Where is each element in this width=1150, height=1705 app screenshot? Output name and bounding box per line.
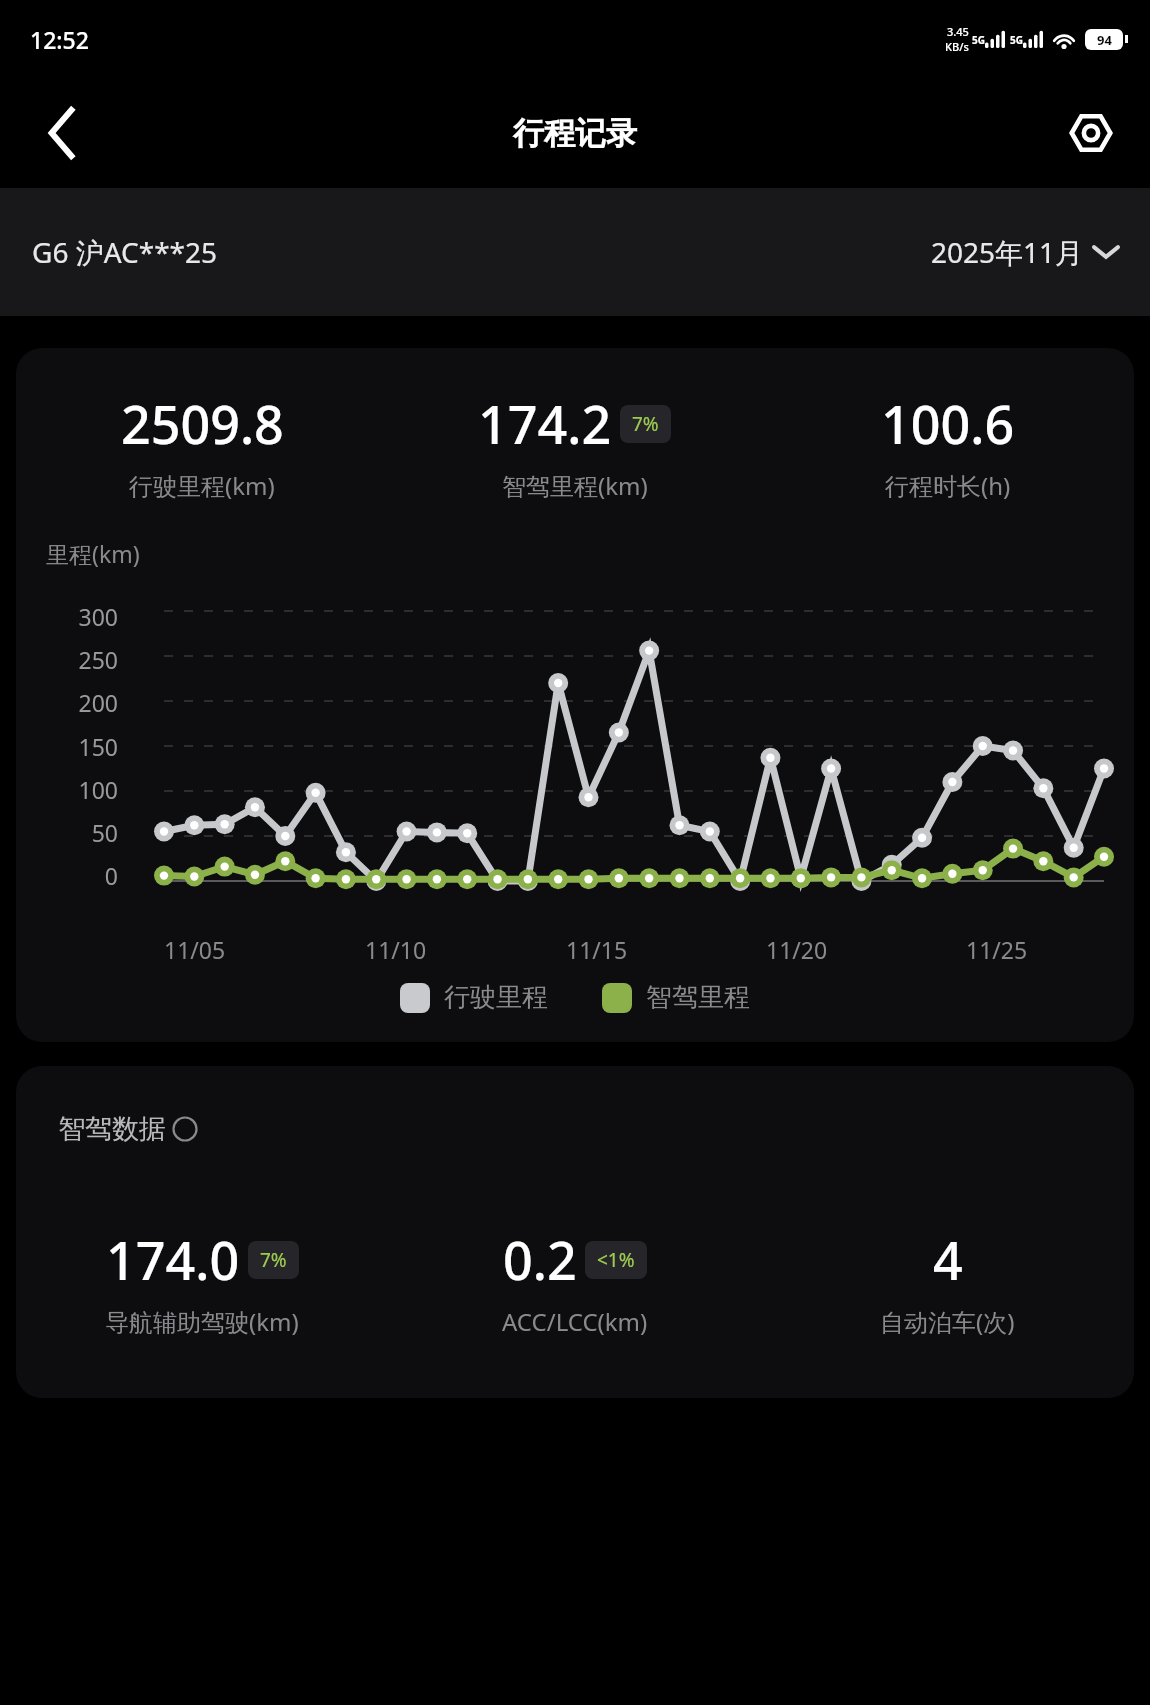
staticText: 4	[933, 1224, 963, 1295]
staticText: 2509.8	[121, 388, 284, 459]
staticText: 自动泊车(次)	[880, 1305, 1015, 1338]
button[interactable]: Settings	[1054, 96, 1128, 170]
staticText: 智驾数据	[58, 1112, 166, 1146]
staticText: 100	[46, 774, 118, 805]
staticText: ACC/LCC(km)	[502, 1305, 648, 1338]
staticText: 11/25	[966, 934, 1028, 965]
staticText: 导航辅助驾驶(km)	[105, 1305, 299, 1338]
staticText: 0	[46, 860, 118, 891]
staticText: 12:52	[30, 24, 89, 55]
staticText: 里程(km)	[46, 538, 140, 569]
staticText: 250	[46, 644, 118, 675]
staticText: 7%	[260, 1247, 287, 1273]
staticText: 300	[46, 601, 118, 632]
button[interactable]: 智驾里程	[602, 981, 750, 1014]
staticText: 7%	[632, 411, 659, 437]
staticText: 11/05	[164, 934, 226, 965]
staticText: 11/10	[365, 934, 427, 965]
staticText: 150	[46, 731, 118, 762]
staticText: 11/15	[566, 934, 628, 965]
staticText: 3.45	[947, 24, 969, 39]
staticText: 智驾里程(km)	[502, 469, 648, 502]
staticText: 174.0	[106, 1224, 240, 1295]
staticText: <1%	[597, 1247, 635, 1273]
staticText: 50	[46, 817, 118, 848]
button[interactable]: 2025年11月	[931, 225, 1118, 279]
staticText: 174.2	[478, 388, 612, 459]
staticText: 5G	[1010, 33, 1023, 47]
staticText: 5G	[972, 33, 985, 47]
button[interactable]: Back	[26, 96, 100, 170]
staticText: 94	[1097, 31, 1112, 49]
staticText: 200	[46, 687, 118, 718]
button[interactable]: 行驶里程	[400, 981, 548, 1014]
staticText: 0.2	[503, 1224, 577, 1295]
staticText: 智驾里程	[646, 981, 750, 1014]
staticText: 100.6	[881, 388, 1015, 459]
staticText: KB/s	[945, 39, 969, 54]
staticText: 行程记录	[513, 114, 637, 153]
button[interactable]: 智驾数据	[58, 1112, 198, 1146]
staticText: G6 沪AC***25	[32, 233, 218, 271]
staticText: 行驶里程	[444, 981, 548, 1014]
staticText: 行驶里程(km)	[129, 469, 275, 502]
staticText: 行程时长(h)	[885, 469, 1011, 502]
staticText: 11/20	[766, 934, 828, 965]
button[interactable]: G6 沪AC***25	[32, 225, 218, 279]
staticText: 2025年11月	[931, 233, 1084, 271]
